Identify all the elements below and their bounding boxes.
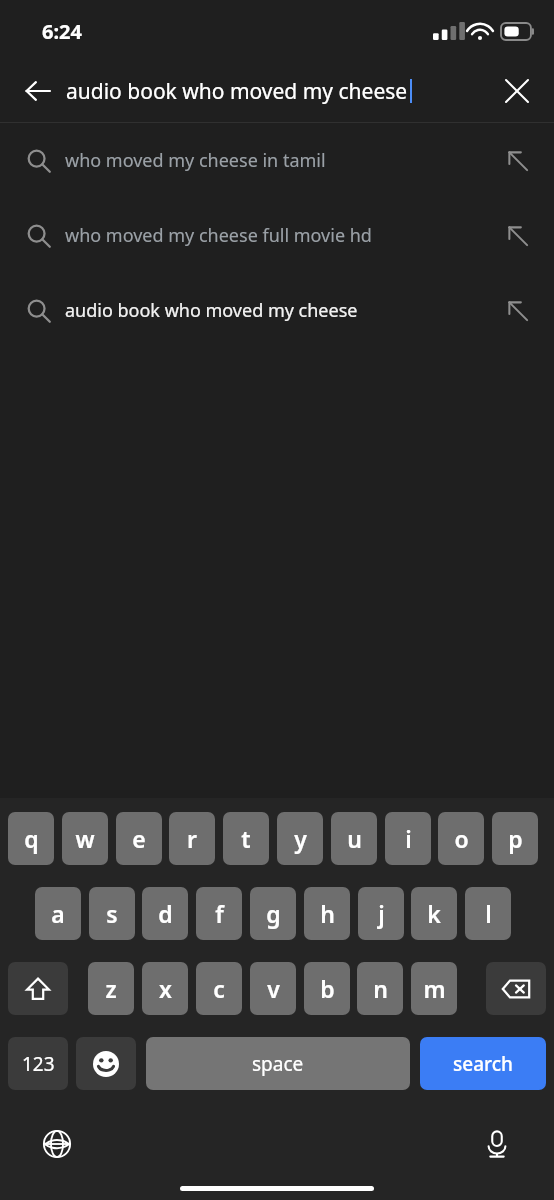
button[interactable]: Emoji [76, 1037, 136, 1090]
button[interactable]: Clear search [493, 67, 541, 115]
button[interactable]: u [331, 812, 377, 865]
staticText: audio book who moved my cheese [66, 77, 408, 106]
button[interactable]: f [196, 887, 242, 940]
button[interactable]: q [8, 812, 54, 865]
button[interactable]: Change language [33, 1120, 81, 1168]
staticText: o [454, 823, 469, 854]
staticText: a [51, 898, 65, 929]
staticText: 6:24 [42, 18, 82, 45]
button[interactable]: who moved my cheese in tamil [0, 123, 554, 198]
staticText: d [158, 898, 173, 929]
button[interactable]: o [438, 812, 484, 865]
staticText: r [187, 823, 197, 854]
button[interactable]: who moved my cheese full movie hd [0, 198, 554, 273]
staticText: y [294, 823, 307, 854]
button[interactable]: e [116, 812, 162, 865]
button[interactable]: x [142, 962, 188, 1015]
staticText: p [508, 823, 523, 854]
staticText: j [378, 898, 385, 929]
button[interactable]: m [411, 962, 457, 1015]
button[interactable]: Back [14, 67, 62, 115]
staticText: g [266, 898, 281, 929]
button[interactable]: h [304, 887, 350, 940]
button[interactable]: v [250, 962, 296, 1015]
button[interactable]: n [357, 962, 403, 1015]
button[interactable]: a [35, 887, 81, 940]
staticText: u [347, 823, 362, 854]
button[interactable]: l [465, 887, 511, 940]
staticText: f [215, 898, 224, 929]
button[interactable]: t [223, 812, 269, 865]
button[interactable]: r [169, 812, 215, 865]
staticText: who moved my cheese full movie hd [65, 223, 372, 248]
staticText: n [373, 973, 388, 1004]
button[interactable]: space [146, 1037, 410, 1090]
staticText: audio book who moved my cheese [65, 298, 358, 323]
staticText: q [24, 823, 39, 854]
staticText: k [427, 898, 441, 929]
staticText: t [241, 823, 251, 854]
staticText: e [132, 823, 146, 854]
button[interactable]: y [277, 812, 323, 865]
staticText: space [252, 1051, 304, 1077]
staticText: s [106, 898, 118, 929]
button[interactable]: p [492, 812, 538, 865]
staticText: l [485, 898, 492, 929]
staticText: b [320, 973, 335, 1004]
staticText: c [213, 973, 225, 1004]
staticText: h [320, 898, 335, 929]
button[interactable]: search [420, 1037, 546, 1090]
button[interactable]: Voice input [473, 1120, 521, 1168]
button[interactable]: audio book who moved my cheese [0, 273, 554, 348]
button[interactable]: Backspace [486, 962, 546, 1015]
staticText: search [453, 1051, 513, 1077]
staticText: 123 [22, 1051, 55, 1077]
button[interactable]: Shift [8, 962, 68, 1015]
button[interactable]: g [250, 887, 296, 940]
staticText: v [267, 973, 280, 1004]
button[interactable]: k [411, 887, 457, 940]
staticText: z [105, 973, 117, 1004]
staticText: i [405, 823, 412, 854]
button[interactable]: w [62, 812, 108, 865]
staticText: w [75, 823, 95, 854]
button[interactable]: j [358, 887, 404, 940]
button[interactable]: 123 [8, 1037, 68, 1090]
button[interactable]: i [385, 812, 431, 865]
button[interactable]: b [304, 962, 350, 1015]
staticText: x [159, 973, 172, 1004]
button[interactable]: s [89, 887, 135, 940]
button[interactable]: z [88, 962, 134, 1015]
button[interactable]: d [142, 887, 188, 940]
staticText: m [423, 973, 446, 1004]
button[interactable]: c [196, 962, 242, 1015]
staticText: who moved my cheese in tamil [65, 148, 326, 173]
